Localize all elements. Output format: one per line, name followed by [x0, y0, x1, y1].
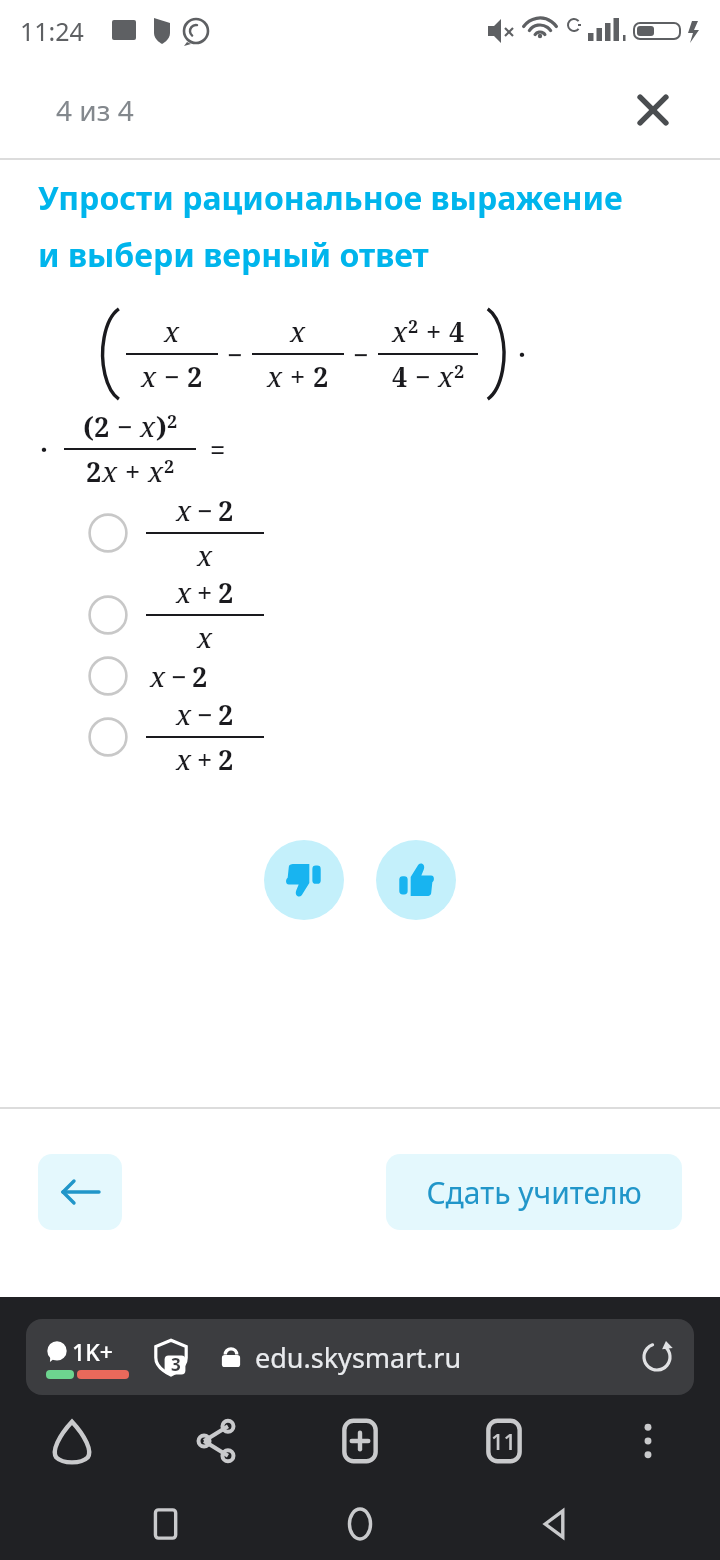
- staticText: ): [156, 408, 167, 445]
- staticText: 2: [164, 454, 175, 479]
- staticText: edu.skysmart.ru: [255, 1339, 462, 1376]
- staticText: x: [176, 574, 192, 611]
- staticText: 1K+: [72, 1336, 113, 1367]
- staticText: 2: [218, 741, 234, 778]
- staticText: ·: [518, 336, 526, 373]
- button[interactable]: Вкладки: [478, 1415, 530, 1467]
- button[interactable]: Обновить: [634, 1334, 680, 1380]
- staticText: 2: [86, 453, 102, 490]
- staticText: Упрости рациональное выражение и выбери …: [38, 176, 630, 276]
- staticText: x: [197, 619, 213, 656]
- button[interactable]: Новая вкладка: [334, 1415, 386, 1467]
- button[interactable]: Назад: [38, 1154, 122, 1230]
- staticText: 3: [171, 1353, 181, 1376]
- staticText: 2: [187, 358, 203, 395]
- staticText: 41: [663, 21, 680, 40]
- staticText: 2: [192, 658, 208, 695]
- staticText: 2: [313, 358, 329, 395]
- staticText: −: [171, 658, 187, 695]
- staticText: 2: [94, 408, 110, 445]
- button[interactable]: Главная: [46, 1415, 98, 1467]
- staticText: −: [220, 336, 250, 373]
- button[interactable]: x: [88, 574, 720, 656]
- staticText: +: [197, 741, 213, 778]
- staticText: +: [419, 313, 449, 350]
- staticText: x: [102, 453, 118, 490]
- staticText: 4 из 4: [56, 91, 134, 129]
- button[interactable]: Сдать учителю: [386, 1154, 682, 1230]
- staticText: 2: [454, 359, 465, 384]
- staticText: 2: [218, 696, 234, 733]
- staticText: x: [176, 696, 192, 733]
- button[interactable]: Закрыть: [630, 87, 676, 133]
- button[interactable]: x: [88, 696, 720, 778]
- button[interactable]: x: [88, 656, 720, 696]
- staticText: −: [110, 408, 140, 445]
- staticText: x: [176, 741, 192, 778]
- staticText: x: [140, 408, 156, 445]
- staticText: x: [148, 453, 164, 490]
- staticText: −: [408, 358, 438, 395]
- staticText: −: [197, 696, 213, 733]
- staticText: x: [438, 358, 454, 395]
- button[interactable]: Нравится: [376, 840, 456, 920]
- button[interactable]: x: [88, 492, 720, 574]
- staticText: x: [164, 313, 180, 350]
- staticText: =: [210, 431, 226, 468]
- staticText: 2: [167, 409, 178, 434]
- button[interactable]: Домой: [332, 1496, 388, 1552]
- staticText: 4: [392, 358, 408, 395]
- staticText: 2: [218, 492, 234, 529]
- staticText: Сдать учителю: [426, 1172, 642, 1213]
- staticText: 11: [491, 1426, 517, 1456]
- staticText: x: [392, 313, 408, 350]
- staticText: +: [197, 574, 213, 611]
- button[interactable]: Назад: [526, 1496, 582, 1552]
- staticText: x: [141, 358, 157, 395]
- staticText: −: [157, 358, 187, 395]
- button[interactable]: Обзор: [138, 1496, 194, 1552]
- staticText: −: [197, 492, 213, 529]
- staticText: 2: [408, 314, 419, 339]
- staticText: +: [283, 358, 313, 395]
- staticText: x: [267, 358, 283, 395]
- button[interactable]: 1K+: [26, 1319, 694, 1395]
- staticText: (: [83, 408, 94, 445]
- staticText: 11:24: [20, 14, 84, 48]
- button[interactable]: Поделиться: [190, 1415, 242, 1467]
- staticText: 2: [218, 574, 234, 611]
- button[interactable]: Не нравится: [264, 840, 344, 920]
- staticText: −: [346, 336, 376, 373]
- staticText: x: [150, 658, 166, 695]
- button[interactable]: Ещё: [622, 1415, 674, 1467]
- staticText: +: [118, 453, 148, 490]
- staticText: x: [290, 313, 306, 350]
- staticText: x: [176, 492, 192, 529]
- staticText: x: [197, 537, 213, 574]
- staticText: 4: [449, 313, 465, 350]
- staticText: ·: [40, 431, 48, 468]
